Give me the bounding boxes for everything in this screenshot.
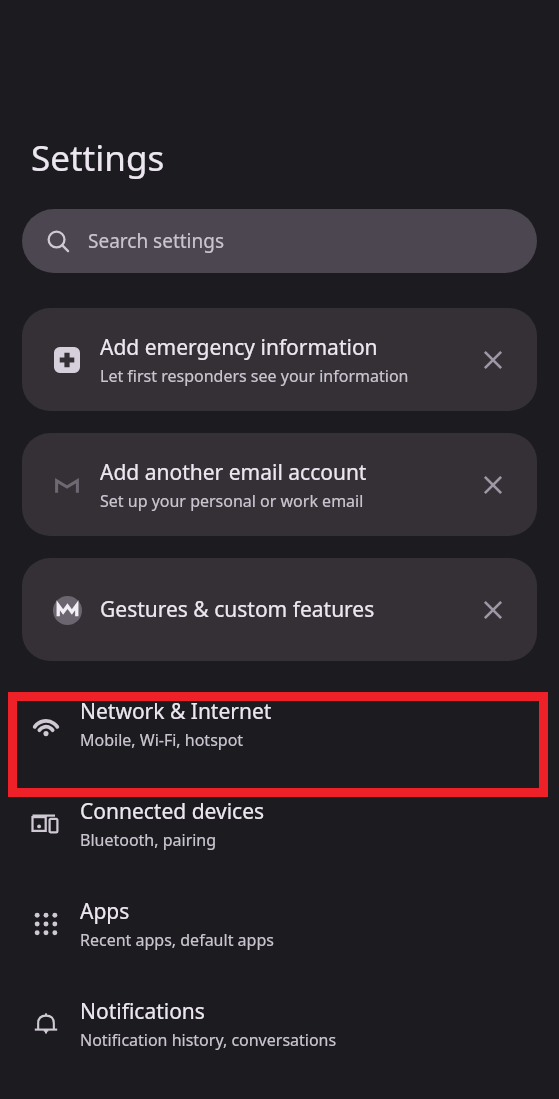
staticText: Gestures & custom features — [100, 595, 375, 624]
button[interactable]: Connected devices — [0, 774, 559, 874]
button[interactable]: Search settings — [22, 209, 537, 273]
staticText: Add emergency information — [100, 333, 378, 362]
staticText: Search settings — [88, 228, 225, 254]
staticText: Notification history, conversations — [80, 1029, 337, 1051]
button[interactable]: Apps — [0, 874, 559, 974]
button[interactable]: Dismiss — [471, 588, 515, 632]
button[interactable]: Add another email account — [22, 433, 537, 536]
staticText: Apps — [80, 897, 130, 926]
button[interactable]: Network & Internet — [0, 674, 559, 774]
staticText: Notifications — [80, 997, 205, 1026]
button[interactable]: Gestures & custom features — [22, 558, 537, 661]
staticText: Connected devices — [80, 797, 265, 826]
staticText: Set up your personal or work email — [100, 490, 364, 512]
staticText: Bluetooth, pairing — [80, 829, 217, 851]
staticText: Add another email account — [100, 458, 367, 487]
staticText: Recent apps, default apps — [80, 929, 274, 951]
staticText: Let first responders see your informatio… — [100, 365, 409, 387]
button[interactable]: Dismiss — [471, 463, 515, 507]
staticText: Network & Internet — [80, 697, 272, 726]
staticText: Mobile, Wi-Fi, hotspot — [80, 729, 244, 751]
button[interactable]: Notifications — [0, 974, 559, 1074]
button[interactable]: Add emergency information — [22, 308, 537, 411]
staticText: Settings — [31, 134, 165, 182]
button[interactable]: Dismiss — [471, 338, 515, 382]
